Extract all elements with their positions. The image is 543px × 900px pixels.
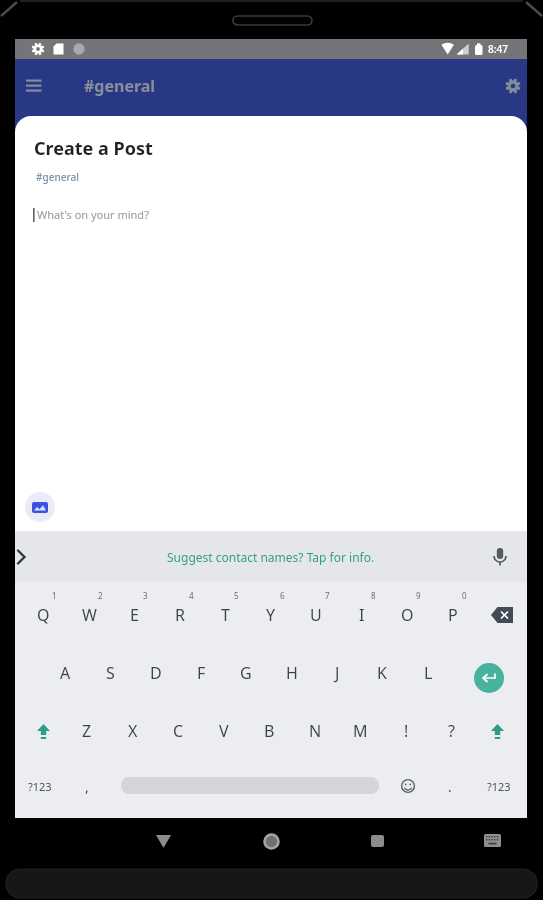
staticText: M bbox=[353, 720, 368, 742]
staticText: O bbox=[401, 604, 414, 626]
staticText: Z bbox=[82, 720, 92, 742]
staticText: Q bbox=[37, 604, 50, 626]
staticText: X bbox=[128, 720, 138, 742]
staticText: G bbox=[240, 662, 252, 684]
staticText: ?123 bbox=[28, 779, 52, 794]
staticText: Suggest contact names? Tap for info. bbox=[167, 549, 375, 565]
staticText: F bbox=[197, 662, 206, 684]
button[interactable]: ? bbox=[429, 705, 473, 757]
button[interactable]: P bbox=[431, 589, 475, 641]
button[interactable]: . bbox=[428, 760, 472, 812]
staticText: L bbox=[424, 662, 433, 684]
staticText: 2 bbox=[98, 590, 103, 601]
staticText: 5 bbox=[234, 590, 239, 601]
staticText: 7 bbox=[325, 590, 330, 601]
staticText: T bbox=[221, 604, 230, 626]
button[interactable]: W bbox=[67, 589, 111, 641]
staticText: #general bbox=[36, 170, 79, 184]
button[interactable]: ?123 bbox=[477, 760, 521, 812]
button[interactable]: M bbox=[338, 705, 382, 757]
button[interactable] bbox=[475, 705, 519, 757]
button[interactable]: E bbox=[112, 589, 156, 641]
button[interactable]: Q bbox=[21, 589, 65, 641]
staticText: R bbox=[175, 604, 185, 626]
staticText: What's on your mind? bbox=[37, 207, 149, 222]
staticText: E bbox=[130, 604, 139, 626]
button[interactable]: R bbox=[158, 589, 202, 641]
staticText: 4 bbox=[189, 590, 194, 601]
button[interactable]: F bbox=[179, 647, 223, 699]
button[interactable]: Suggest contact names? Tap for info. bbox=[15, 531, 527, 582]
button[interactable]: K bbox=[360, 647, 404, 699]
staticText: Create a Post bbox=[34, 136, 153, 161]
staticText: 1 bbox=[52, 590, 57, 601]
staticText: I bbox=[359, 604, 365, 626]
button[interactable]: ! bbox=[384, 705, 428, 757]
button[interactable]: V bbox=[202, 705, 246, 757]
button[interactable]: O bbox=[385, 589, 429, 641]
staticText: ?123 bbox=[487, 779, 511, 794]
staticText: H bbox=[286, 662, 298, 684]
staticText: A bbox=[60, 662, 71, 684]
button[interactable]: G bbox=[224, 647, 268, 699]
staticText: W bbox=[82, 604, 97, 626]
button[interactable]: A bbox=[43, 647, 87, 699]
button[interactable] bbox=[486, 543, 514, 571]
staticText: V bbox=[219, 720, 229, 742]
staticText: U bbox=[310, 604, 322, 626]
staticText: D bbox=[150, 662, 162, 684]
button[interactable] bbox=[394, 772, 422, 800]
button[interactable]: C bbox=[156, 705, 200, 757]
button[interactable]: Y bbox=[249, 589, 293, 641]
staticText: J bbox=[335, 662, 340, 684]
staticText: Y bbox=[266, 604, 276, 626]
staticText: K bbox=[377, 662, 387, 684]
button[interactable] bbox=[363, 827, 391, 855]
staticText: ! bbox=[404, 720, 409, 742]
staticText: 3 bbox=[143, 590, 148, 601]
staticText: B bbox=[264, 720, 275, 742]
staticText: . bbox=[448, 777, 452, 796]
staticText: N bbox=[309, 720, 322, 742]
button[interactable]: D bbox=[134, 647, 178, 699]
staticText: 0 bbox=[462, 590, 467, 601]
staticText: S bbox=[106, 662, 115, 684]
button[interactable]: , bbox=[65, 760, 109, 812]
button[interactable] bbox=[149, 827, 177, 855]
button[interactable] bbox=[21, 705, 65, 757]
button[interactable]: ?123 bbox=[18, 760, 62, 812]
button[interactable] bbox=[25, 492, 55, 522]
button[interactable]: N bbox=[293, 705, 337, 757]
button[interactable]: U bbox=[294, 589, 338, 641]
button[interactable]: Z bbox=[65, 705, 109, 757]
button[interactable] bbox=[478, 826, 506, 854]
button[interactable]: H bbox=[270, 647, 314, 699]
staticText: P bbox=[448, 604, 458, 626]
staticText: , bbox=[85, 777, 89, 796]
button[interactable] bbox=[257, 827, 285, 855]
button[interactable] bbox=[499, 72, 526, 99]
staticText: ? bbox=[448, 720, 455, 742]
staticText: 6 bbox=[280, 590, 285, 601]
button[interactable]: I bbox=[340, 589, 384, 641]
staticText: C bbox=[173, 720, 184, 742]
staticText: 8 bbox=[371, 590, 376, 601]
button[interactable]: S bbox=[88, 647, 132, 699]
staticText: 9 bbox=[416, 590, 421, 601]
staticText: 8:47 bbox=[488, 42, 508, 56]
button[interactable]: J bbox=[315, 647, 359, 699]
button[interactable] bbox=[474, 663, 504, 693]
button[interactable] bbox=[480, 593, 524, 637]
button[interactable] bbox=[19, 72, 49, 98]
button[interactable]: L bbox=[406, 647, 450, 699]
button[interactable]: B bbox=[247, 705, 291, 757]
button[interactable]: X bbox=[111, 705, 155, 757]
staticText: #general bbox=[84, 75, 156, 97]
button[interactable]: T bbox=[203, 589, 247, 641]
